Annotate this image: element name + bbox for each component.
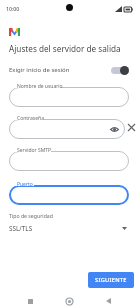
staticText: Puerto bbox=[17, 181, 33, 188]
button[interactable]: SIGUIENTE bbox=[88, 272, 134, 288]
button[interactable]: Exigir inicio de sesión bbox=[0, 63, 138, 77]
staticText: Exigir inicio de sesión bbox=[9, 66, 70, 74]
other: Gmail bbox=[9, 28, 20, 36]
staticText: Nombre de usuario bbox=[17, 83, 63, 90]
staticText: Tipo de seguridad bbox=[9, 212, 53, 219]
button[interactable]: Desplegar tipo de seguridad bbox=[119, 223, 129, 233]
button[interactable]: Mostrar contraseña bbox=[109, 124, 119, 134]
button[interactable]: Exigir inicio de sesión bbox=[111, 66, 129, 75]
button[interactable]: Borrar bbox=[125, 117, 138, 137]
button[interactable]: Atrás bbox=[99, 294, 117, 308]
staticText: Contraseña bbox=[17, 115, 44, 122]
staticText: SIGUIENTE bbox=[95, 276, 127, 284]
button[interactable] bbox=[9, 185, 129, 205]
staticText: SSL/TLS bbox=[9, 224, 33, 233]
button[interactable] bbox=[9, 151, 129, 171]
button[interactable]: Recientes bbox=[21, 294, 39, 308]
staticText: 10:00 bbox=[6, 5, 20, 12]
button[interactable] bbox=[9, 119, 125, 139]
staticText: Ajustes del servidor de salida bbox=[9, 43, 121, 54]
staticText: Servidor SMTP bbox=[17, 147, 52, 154]
button[interactable] bbox=[9, 87, 129, 107]
button[interactable]: Inicio bbox=[60, 294, 78, 308]
button[interactable]: Tipo de seguridad bbox=[0, 212, 138, 233]
